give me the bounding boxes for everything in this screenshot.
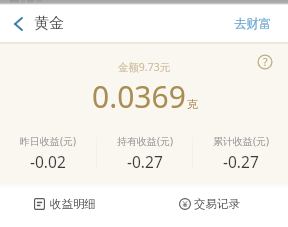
staticText: 昨日收益(元) [20,134,76,148]
button[interactable]: 交易记录 [144,189,288,227]
staticText: 持有收益(元) [117,134,173,148]
staticText: ? [263,55,268,69]
button[interactable]: 去财富 [218,5,288,42]
staticText: 黄金 [34,14,64,33]
button[interactable]: Back [0,5,34,42]
staticText: 累计收益(元) [213,134,269,148]
staticText: -0.02 [30,151,66,172]
staticText: 去财富 [234,16,272,32]
staticText: -0.27 [127,151,163,172]
staticText: -0.27 [223,151,259,172]
button[interactable]: 收益明细 [0,189,144,227]
staticText: 金额9.73元 [0,60,288,74]
staticText: 交易记录 [194,197,240,211]
staticText: 克 [187,97,198,111]
staticText: 0.0369 [92,76,186,117]
button[interactable]: Help [256,53,274,71]
staticText: 收益明细 [50,197,96,211]
